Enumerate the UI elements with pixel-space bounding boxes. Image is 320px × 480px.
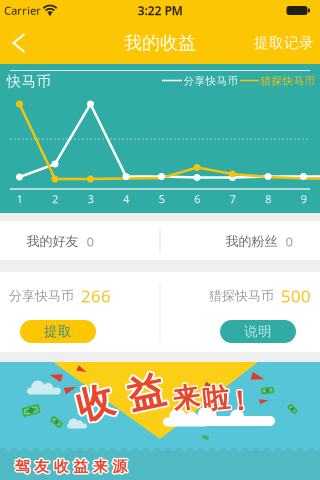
staticText: 源 bbox=[114, 457, 129, 476]
staticText: 收 bbox=[75, 378, 112, 425]
staticText: 来 bbox=[174, 380, 201, 414]
staticText: 7 bbox=[229, 191, 235, 206]
staticText: 收 bbox=[74, 380, 111, 426]
staticText: 友 bbox=[34, 456, 49, 474]
staticText: 来 bbox=[93, 457, 108, 476]
staticText: 收 bbox=[76, 378, 113, 424]
staticText: 266 bbox=[81, 284, 111, 308]
staticText: 友 bbox=[34, 457, 49, 476]
staticText: 啦 bbox=[204, 381, 231, 415]
staticText: 驾 bbox=[16, 456, 31, 475]
staticText: 友 bbox=[35, 456, 50, 475]
staticText: 益 bbox=[129, 368, 166, 415]
staticText: 益 bbox=[129, 370, 166, 416]
staticText: 2 bbox=[52, 191, 58, 206]
staticText: 益 bbox=[74, 458, 89, 477]
staticText: 驾 bbox=[13, 457, 28, 476]
staticText: 源 bbox=[113, 456, 128, 475]
staticText: 来 bbox=[171, 381, 198, 415]
staticText: 源 bbox=[111, 457, 126, 476]
staticText: 收 bbox=[54, 456, 69, 474]
staticText: 来 bbox=[171, 380, 198, 414]
staticText: 4 bbox=[123, 191, 129, 206]
staticText: 友 bbox=[33, 456, 48, 475]
staticText: 驾 bbox=[14, 456, 29, 475]
staticText: 驾 bbox=[15, 459, 30, 477]
staticText: 驾 bbox=[16, 458, 31, 477]
staticText: 收 bbox=[53, 456, 68, 475]
staticText: 我的好友 bbox=[26, 233, 78, 250]
staticText: ！ bbox=[228, 385, 255, 419]
staticText: 益 bbox=[126, 371, 163, 418]
staticText: 益 bbox=[73, 456, 88, 474]
button[interactable]: Back bbox=[5, 28, 32, 58]
staticText: 提取 bbox=[44, 323, 72, 340]
staticText: 来 bbox=[94, 457, 109, 476]
button[interactable]: 我的好友 bbox=[26, 233, 93, 250]
staticText: 0 bbox=[86, 233, 93, 250]
staticText: 来 bbox=[92, 458, 107, 477]
staticText: 猎探快马币 bbox=[209, 288, 274, 304]
staticText: 源 bbox=[111, 458, 126, 477]
button[interactable]: 提取 bbox=[20, 320, 96, 343]
staticText: 啦 bbox=[204, 382, 231, 416]
staticText: 啦 bbox=[202, 383, 229, 417]
staticText: 收 bbox=[78, 378, 115, 425]
staticText: 收 bbox=[55, 457, 70, 476]
staticText: 说明 bbox=[244, 323, 272, 340]
staticText: ！ bbox=[225, 384, 252, 418]
staticText: 益 bbox=[75, 457, 90, 476]
button[interactable]: 提取记录 bbox=[254, 26, 314, 60]
button[interactable]: 我的粉丝 bbox=[225, 233, 292, 250]
staticText: 收 bbox=[76, 382, 113, 428]
staticText: 益 bbox=[125, 370, 162, 416]
staticText: 来 bbox=[91, 457, 106, 476]
staticText: 益 bbox=[74, 456, 89, 475]
staticText: 500 bbox=[281, 284, 311, 308]
staticText: 啦 bbox=[202, 382, 229, 416]
staticText: 来 bbox=[93, 459, 108, 477]
staticText: 啦 bbox=[201, 383, 228, 417]
staticText: 提取记录 bbox=[254, 34, 314, 52]
staticText: ！ bbox=[226, 382, 253, 416]
staticText: 益 bbox=[72, 457, 87, 476]
button[interactable]: 说明 bbox=[220, 320, 296, 343]
staticText: 啦 bbox=[201, 381, 228, 415]
staticText: 分享快马币 bbox=[183, 74, 238, 88]
staticText: 友 bbox=[33, 458, 48, 477]
staticText: 益 bbox=[127, 368, 164, 414]
staticText: 友 bbox=[34, 459, 49, 477]
staticText: 收 bbox=[54, 459, 69, 477]
staticText: 快马币 bbox=[6, 72, 51, 91]
staticText: 收 bbox=[55, 458, 70, 477]
staticText: 益 bbox=[126, 368, 163, 415]
staticText: 益 bbox=[73, 457, 88, 476]
staticText: 收 bbox=[78, 380, 115, 426]
staticText: 猎探快马币 bbox=[260, 74, 315, 88]
staticText: 来 bbox=[172, 379, 199, 413]
staticText: 益 bbox=[129, 371, 166, 418]
staticText: ！ bbox=[225, 383, 252, 417]
staticText: 友 bbox=[35, 458, 50, 477]
staticText: 益 bbox=[73, 459, 88, 477]
staticText: 来 bbox=[94, 456, 109, 475]
staticText: 来 bbox=[171, 382, 198, 416]
staticText: 来 bbox=[172, 381, 199, 415]
staticText: 分享快马币 bbox=[9, 288, 74, 304]
staticText: 益 bbox=[72, 456, 87, 475]
staticText: 源 bbox=[112, 456, 127, 474]
staticText: ！ bbox=[225, 385, 252, 419]
staticText: 8 bbox=[265, 191, 271, 206]
staticText: 我的粉丝 bbox=[225, 233, 277, 250]
staticText: ！ bbox=[228, 384, 255, 418]
staticText: 收 bbox=[55, 456, 70, 475]
staticText: 我的收益 bbox=[124, 32, 196, 54]
staticText: 收 bbox=[75, 381, 112, 428]
staticText: Carrier bbox=[4, 3, 41, 18]
staticText: 3:22 PM bbox=[137, 2, 182, 19]
staticText: 驾 bbox=[16, 457, 31, 476]
staticText: ！ bbox=[226, 385, 253, 419]
staticText: 收 bbox=[76, 380, 113, 426]
staticText: 6 bbox=[194, 191, 200, 206]
staticText: 友 bbox=[33, 457, 48, 476]
